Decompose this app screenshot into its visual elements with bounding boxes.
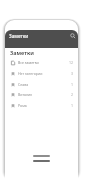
staticText: Нет категории — [18, 71, 43, 76]
button[interactable]: Нет категории — [5, 68, 78, 79]
staticText: 3 — [71, 71, 74, 76]
staticText: Рома — [18, 103, 27, 108]
button[interactable]: Слава — [5, 79, 78, 90]
button[interactable]: Search — [68, 31, 77, 40]
button[interactable]: Все заметки — [5, 57, 78, 68]
staticText: 1 — [71, 103, 74, 108]
button[interactable]: Рома — [5, 100, 78, 111]
staticText: Слава — [18, 82, 29, 87]
staticText: Виталик — [18, 92, 33, 97]
staticText: 1 — [71, 82, 74, 87]
button[interactable]: Виталик — [5, 89, 78, 100]
staticText: 2 — [71, 92, 74, 97]
staticText: 12 — [69, 60, 74, 65]
staticText: Заметки — [10, 49, 34, 57]
staticText: Заметки — [9, 33, 29, 39]
staticText: Все заметки — [18, 60, 39, 65]
